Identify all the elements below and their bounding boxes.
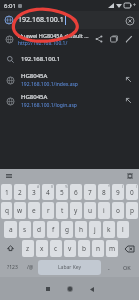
button[interactable]: Insert suggestion (123, 74, 134, 85)
button[interactable]: Back (83, 280, 101, 298)
button[interactable]: j (89, 221, 101, 238)
button[interactable]: Recent apps (39, 280, 57, 298)
staticText: Labar Key (58, 264, 82, 271)
staticText: c (54, 244, 58, 253)
button[interactable]: n (92, 240, 104, 257)
button[interactable]: g (61, 221, 73, 238)
button[interactable]: p (126, 202, 138, 219)
button[interactable]: d (33, 221, 45, 238)
button[interactable]: w (14, 202, 26, 219)
button[interactable]: t (56, 202, 68, 219)
staticText: 192.168.100.1/login.asp (21, 102, 77, 109)
button[interactable]: r (42, 202, 54, 219)
button[interactable]: f (47, 221, 59, 238)
button[interactable]: Keyboard settings (125, 171, 135, 181)
button[interactable]: e (28, 202, 40, 219)
staticText: w (17, 206, 23, 215)
staticText: 1 (5, 188, 9, 197)
button[interactable]: ?123 (1, 259, 23, 276)
button[interactable]: Keyboard menu (4, 171, 14, 181)
staticText: . (108, 263, 110, 272)
staticText: 8 (102, 188, 106, 197)
staticText: 5 (60, 188, 64, 197)
staticText: 4 (46, 188, 50, 197)
button[interactable]: Shift (1, 240, 20, 257)
button[interactable]: Edit (123, 33, 135, 45)
button[interactable]: 7 (84, 184, 96, 200)
staticText: 192.168.100.1 (18, 15, 64, 25)
staticText: + (133, 2, 136, 9)
button[interactable]: x (36, 240, 48, 257)
staticText: d (37, 225, 41, 234)
button[interactable]: v (64, 240, 76, 257)
button[interactable]: o (112, 202, 124, 219)
staticText: 2 (18, 188, 22, 197)
staticText: e (32, 206, 36, 215)
button[interactable]: h (75, 221, 87, 238)
button[interactable]: Clear text (124, 15, 135, 26)
button[interactable]: s (19, 221, 31, 238)
button[interactable]: Share (93, 33, 105, 45)
staticText: a (9, 225, 13, 234)
button[interactable]: k (103, 221, 115, 238)
button[interactable]: b (78, 240, 90, 257)
button[interactable]: Open in new tab (108, 33, 120, 45)
staticText: * (108, 184, 110, 189)
button[interactable]: /@ (25, 259, 36, 276)
button[interactable]: m (106, 240, 118, 257)
staticText: $ (51, 184, 54, 189)
staticText: g (65, 225, 69, 234)
staticText: x (40, 244, 44, 253)
button[interactable]: 5 (56, 184, 68, 200)
button[interactable]: q (1, 202, 12, 219)
staticText: HG8045A (21, 93, 48, 101)
staticText: Huawei HG8045A default use ty ... (18, 32, 90, 39)
staticText: /@ (27, 264, 34, 271)
staticText: q (5, 206, 9, 215)
staticText: # (37, 184, 40, 189)
staticText: OK (123, 264, 131, 271)
button[interactable]: y (70, 202, 82, 219)
button[interactable]: OK (116, 259, 138, 276)
button[interactable]: Home (61, 280, 79, 298)
button[interactable]: 4 (42, 184, 54, 200)
button[interactable]: HG8045A (0, 90, 139, 111)
button[interactable]: Insert suggestion (123, 95, 134, 106)
staticText: h (79, 225, 84, 234)
button[interactable]: u (84, 202, 96, 219)
button[interactable]: 3 (28, 184, 40, 200)
button[interactable]: 1 (1, 184, 12, 200)
button[interactable]: i (98, 202, 110, 219)
staticText: ( (122, 184, 124, 189)
staticText: b (82, 244, 86, 253)
button[interactable]: 8 (98, 184, 110, 200)
staticText: p (130, 206, 134, 215)
button[interactable]: Labar Key (38, 260, 101, 275)
button[interactable]: 6 (70, 184, 82, 200)
button[interactable]: Site information (4, 15, 14, 25)
staticText: ) (136, 184, 138, 189)
button[interactable]: l (117, 221, 129, 238)
button[interactable]: HG8045A (0, 69, 139, 90)
staticText: j (94, 225, 96, 234)
button[interactable]: z (22, 240, 34, 257)
button[interactable]: 0 (126, 184, 138, 200)
button[interactable]: 192.168.100.1 (0, 49, 139, 69)
button[interactable]: c (50, 240, 62, 257)
staticText: r (47, 206, 50, 215)
button[interactable]: 9 (112, 184, 124, 200)
staticText: 6 (74, 188, 78, 197)
staticText: 0 (130, 188, 134, 197)
staticText: ?123 (7, 264, 18, 271)
staticText: y (74, 206, 78, 215)
staticText: % (65, 184, 68, 189)
button[interactable]: Backspace (120, 240, 138, 257)
staticText: n (96, 244, 101, 253)
staticText: 9 (116, 188, 120, 197)
button[interactable]: 2 (14, 184, 26, 200)
staticText: f (52, 225, 55, 234)
button[interactable]: a (4, 221, 17, 238)
staticText: t (61, 206, 64, 215)
staticText: 192.168.100.1 (21, 55, 61, 63)
button[interactable]: . (103, 259, 114, 276)
